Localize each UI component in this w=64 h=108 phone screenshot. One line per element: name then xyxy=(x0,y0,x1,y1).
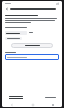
button[interactable]: Home xyxy=(30,102,35,107)
button[interactable] xyxy=(5,54,59,60)
button[interactable]: Back xyxy=(9,102,14,107)
button[interactable] xyxy=(43,94,57,100)
button[interactable] xyxy=(5,37,22,40)
button[interactable] xyxy=(5,30,59,35)
button[interactable]: Recent apps xyxy=(50,102,55,107)
button[interactable]: Back xyxy=(4,6,9,11)
button[interactable] xyxy=(11,43,53,48)
button[interactable] xyxy=(7,94,25,100)
